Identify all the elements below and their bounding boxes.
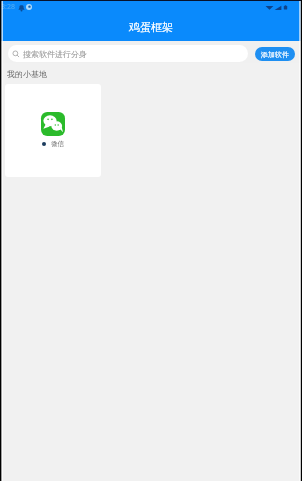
staticText: 搜索软件进行分身 [23,49,87,59]
staticText: 微信 [51,140,64,148]
button[interactable]: 添加软件 [255,47,295,61]
button[interactable]: 微信 [5,84,101,177]
staticText: 我的小基地 [7,69,47,79]
button[interactable]: 搜索软件进行分身 [8,45,248,62]
staticText: 3:28 [1,2,15,12]
staticText: 添加软件 [261,50,289,59]
staticText: 鸡蛋框架 [129,20,173,34]
